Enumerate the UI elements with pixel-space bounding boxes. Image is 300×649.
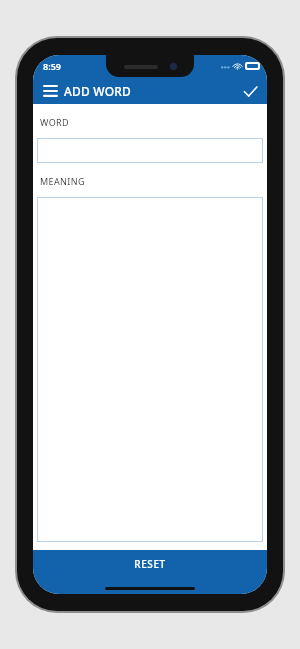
staticText: WORD — [40, 116, 70, 128]
staticText: MEANING — [40, 175, 86, 187]
button[interactable]: RESET — [33, 550, 267, 578]
button[interactable]: Save word — [238, 79, 262, 103]
staticText: ADD WORD — [64, 83, 132, 99]
staticText: RESET — [134, 557, 166, 571]
staticText: 8:59 — [43, 60, 61, 72]
button[interactable] — [37, 197, 263, 542]
button[interactable]: Open navigation menu — [39, 80, 61, 102]
button[interactable] — [37, 138, 263, 163]
